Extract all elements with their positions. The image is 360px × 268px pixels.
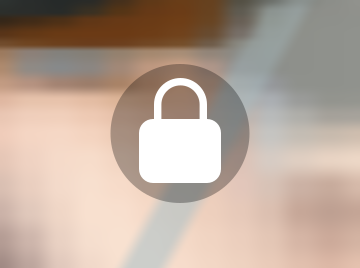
button[interactable]: Locked content bbox=[110, 64, 249, 203]
